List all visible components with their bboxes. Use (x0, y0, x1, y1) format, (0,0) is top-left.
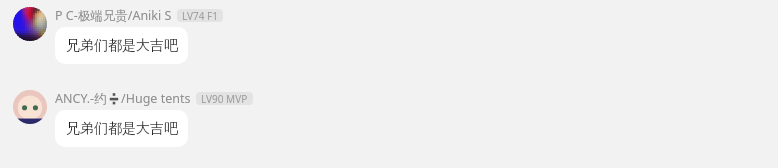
staticText: 兄弟们都是大吉吧 (66, 37, 178, 55)
button[interactable]: 兄弟们都是大吉吧 (55, 110, 188, 147)
staticText: LV90 MVP (201, 92, 248, 105)
staticText: ANCY.-约 (55, 90, 107, 107)
button[interactable]: Avatar (13, 7, 47, 41)
button[interactable]: 兄弟们都是大吉吧 (55, 27, 188, 64)
staticText: P C-极端兄贵/Aniki S (55, 7, 172, 24)
button[interactable]: Avatar (13, 90, 47, 124)
staticText: LV74 F1 (182, 9, 218, 22)
staticText: /Huge tents (121, 90, 191, 107)
button[interactable]: LV74 F1 (177, 9, 223, 22)
button[interactable]: LV90 MVP (196, 92, 253, 105)
staticText: 兄弟们都是大吉吧 (66, 120, 178, 138)
